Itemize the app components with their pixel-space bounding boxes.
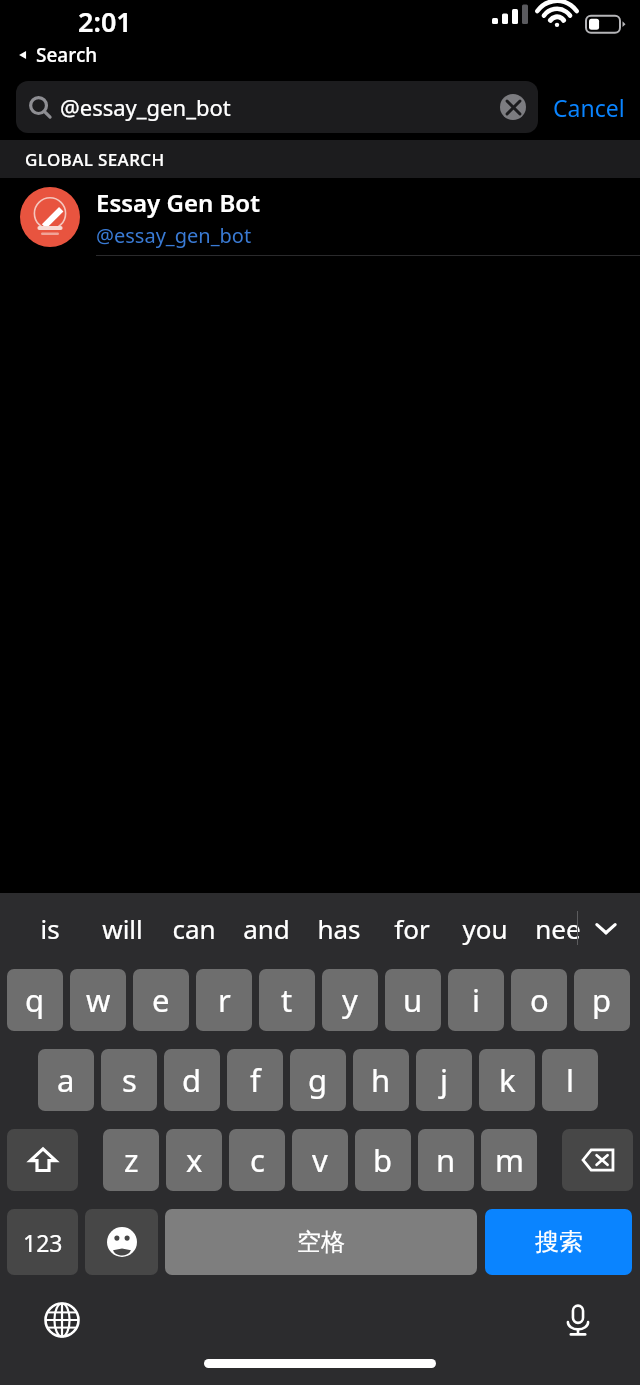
staticText: l [566,1059,574,1101]
button[interactable]: a [38,1049,94,1111]
staticText: d [182,1059,202,1101]
button[interactable]: nee [521,893,594,963]
button[interactable]: f [227,1049,283,1111]
button[interactable]: z [103,1129,159,1191]
button[interactable]: l [542,1049,598,1111]
staticText: c [250,1139,265,1181]
button[interactable]: g [290,1049,346,1111]
staticText: will [102,911,143,946]
staticText: k [499,1059,516,1101]
staticText: g [308,1059,328,1101]
button[interactable]: Hide suggestions [582,904,630,952]
button[interactable]: 123 [7,1209,78,1275]
button[interactable]: v [292,1129,348,1191]
staticText: 空格 [297,1227,345,1257]
staticText: can [172,911,216,946]
staticText: e [152,979,170,1021]
staticText: and [243,911,290,946]
staticText: Search [36,42,98,68]
button[interactable]: you [448,893,521,963]
button[interactable]: d [164,1049,220,1111]
button[interactable]: o [511,969,567,1031]
staticText: h [371,1059,391,1101]
staticText: a [57,1059,75,1101]
button[interactable]: m [481,1129,537,1191]
button[interactable]: b [355,1129,411,1191]
button[interactable]: r [196,969,252,1031]
button[interactable]: is [14,893,86,963]
button[interactable]: p [574,969,630,1031]
staticText: m [495,1139,524,1181]
staticText: b [373,1139,393,1181]
staticText: nee [535,911,581,946]
staticText: Essay Gen Bot [96,186,260,219]
staticText: i [472,979,480,1021]
staticText: r [218,979,231,1021]
button[interactable]: Backspace [562,1129,633,1191]
button[interactable]: y [322,969,378,1031]
staticText: p [592,979,612,1021]
staticText: x [186,1139,203,1181]
button[interactable]: Emoji [85,1209,158,1275]
button[interactable]: e [133,969,189,1031]
button[interactable]: Voice input [552,1294,604,1346]
button[interactable]: for [375,893,448,963]
button[interactable]: can [158,893,230,963]
button[interactable]: Cancel [538,81,640,133]
staticText: n [436,1139,456,1181]
button[interactable]: and [230,893,302,963]
staticText: o [530,979,549,1021]
button[interactable]: w [70,969,126,1031]
button[interactable]: c [229,1129,285,1191]
button[interactable]: Shift [7,1129,78,1191]
button[interactable]: i [448,969,504,1031]
staticText: t [281,979,293,1021]
button[interactable]: Essay Gen Bot [0,178,640,256]
staticText: Cancel [553,92,625,123]
staticText: is [40,911,60,946]
button[interactable]: n [418,1129,474,1191]
button[interactable]: has [302,893,375,963]
staticText: @essay_gen_bot [60,92,500,122]
staticText: has [317,911,361,946]
staticText: for [394,911,430,946]
staticText: 搜索 [535,1227,583,1257]
staticText: j [440,1059,448,1101]
staticText: you [462,911,508,946]
button[interactable]: j [416,1049,472,1111]
staticText: z [124,1139,139,1181]
staticText: GLOBAL SEARCH [25,148,165,171]
button[interactable]: Search [16,42,98,68]
button[interactable]: h [353,1049,409,1111]
button[interactable]: k [479,1049,535,1111]
staticText: q [25,979,45,1021]
button[interactable]: will [86,893,158,963]
button[interactable]: t [259,969,315,1031]
button[interactable]: Clear [500,94,526,120]
staticText: w [86,979,111,1021]
staticText: u [403,979,423,1021]
button[interactable]: Change keyboard language [36,1294,88,1346]
staticText: 2:01 [78,3,132,40]
staticText: y [342,979,358,1021]
staticText: @essay_gen_bot [96,222,252,249]
button[interactable]: 空格 [165,1209,477,1275]
button[interactable]: @essay_gen_bot [16,81,538,133]
button[interactable]: 搜索 [485,1209,632,1275]
button[interactable]: s [101,1049,157,1111]
staticText: f [250,1059,261,1101]
button[interactable]: q [7,969,63,1031]
staticText: s [122,1059,137,1101]
button[interactable]: x [166,1129,222,1191]
staticText: v [312,1139,328,1181]
staticText: 123 [23,1227,63,1258]
button[interactable]: u [385,969,441,1031]
